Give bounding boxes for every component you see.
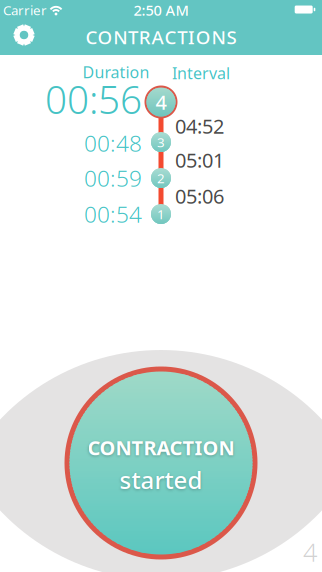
staticText: Carrier — [3, 1, 47, 19]
button[interactable]: Settings — [9, 20, 39, 50]
staticText: 1 — [157, 205, 165, 223]
staticText: 04:52 — [175, 113, 224, 139]
staticText: 4 — [303, 535, 317, 569]
staticText: 00:54 — [84, 199, 142, 229]
staticText: CONTRACTIONS — [86, 25, 236, 49]
staticText: Interval — [172, 62, 230, 84]
staticText: started — [119, 464, 202, 496]
staticText: 2 — [157, 169, 165, 187]
staticText: 00:48 — [84, 128, 142, 158]
staticText: 4 — [155, 89, 166, 115]
staticText: Duration — [82, 61, 149, 83]
button[interactable]: CONTRACTION — [64, 366, 257, 559]
staticText: 3 — [157, 133, 165, 151]
staticText: 2:50 AM — [133, 0, 188, 20]
staticText: 05:06 — [175, 183, 224, 209]
staticText: 00:59 — [84, 163, 142, 193]
staticText: CONTRACTION — [87, 434, 234, 461]
staticText: 00:56 — [45, 73, 142, 125]
staticText: 05:01 — [175, 147, 224, 173]
